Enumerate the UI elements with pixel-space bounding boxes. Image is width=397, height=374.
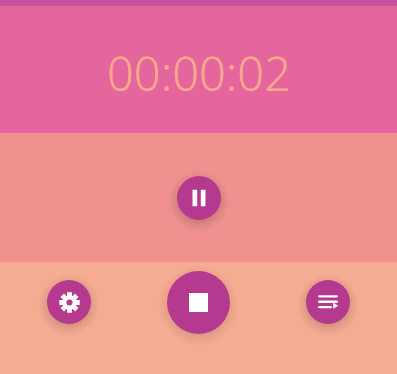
button[interactable]: Pause bbox=[177, 176, 221, 220]
staticText: 00:00:02 bbox=[107, 41, 291, 105]
button[interactable]: Stop bbox=[167, 271, 230, 334]
button[interactable]: Settings bbox=[47, 280, 91, 324]
button[interactable]: Playlist bbox=[306, 280, 350, 324]
